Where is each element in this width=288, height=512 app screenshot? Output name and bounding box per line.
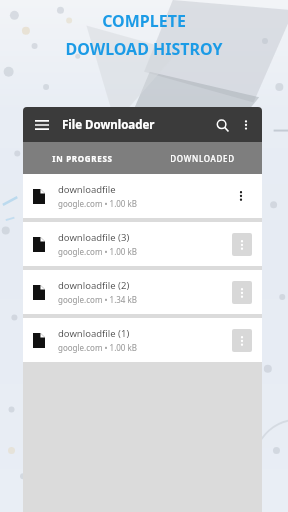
staticText: downloadfile (1) (58, 327, 130, 340)
staticText: google.com • 1.34 kB (58, 294, 137, 305)
staticText: downloadfile (58, 183, 116, 196)
button[interactable]: File options (232, 233, 252, 256)
staticText: File Downloader (62, 117, 155, 133)
staticText: DOWNLOADED (170, 153, 235, 164)
button[interactable]: Search (210, 113, 234, 137)
button[interactable]: downloadfile (2) (23, 270, 262, 314)
staticText: DOWLOAD HISTROY (65, 38, 223, 60)
button[interactable]: DOWNLOADED (142, 142, 262, 174)
button[interactable]: File options (232, 329, 252, 352)
button[interactable]: IN PROGRESS (23, 142, 142, 174)
button[interactable]: downloadfile (3) (23, 222, 262, 266)
staticText: IN PROGRESS (52, 153, 113, 164)
button[interactable]: File options (230, 185, 252, 207)
button[interactable]: downloadfile (1) (23, 318, 262, 362)
staticText: COMPLETE (102, 10, 186, 32)
staticText: google.com • 1.00 kB (58, 342, 137, 353)
button[interactable]: File options (232, 281, 252, 304)
staticText: downloadfile (3) (58, 231, 130, 244)
staticText: google.com • 1.00 kB (58, 246, 137, 257)
button[interactable]: Open navigation menu (30, 113, 54, 137)
staticText: downloadfile (2) (58, 279, 130, 292)
staticText: google.com • 1.00 kB (58, 198, 137, 209)
button[interactable]: More options (234, 113, 258, 137)
button[interactable]: downloadfile (23, 174, 262, 218)
